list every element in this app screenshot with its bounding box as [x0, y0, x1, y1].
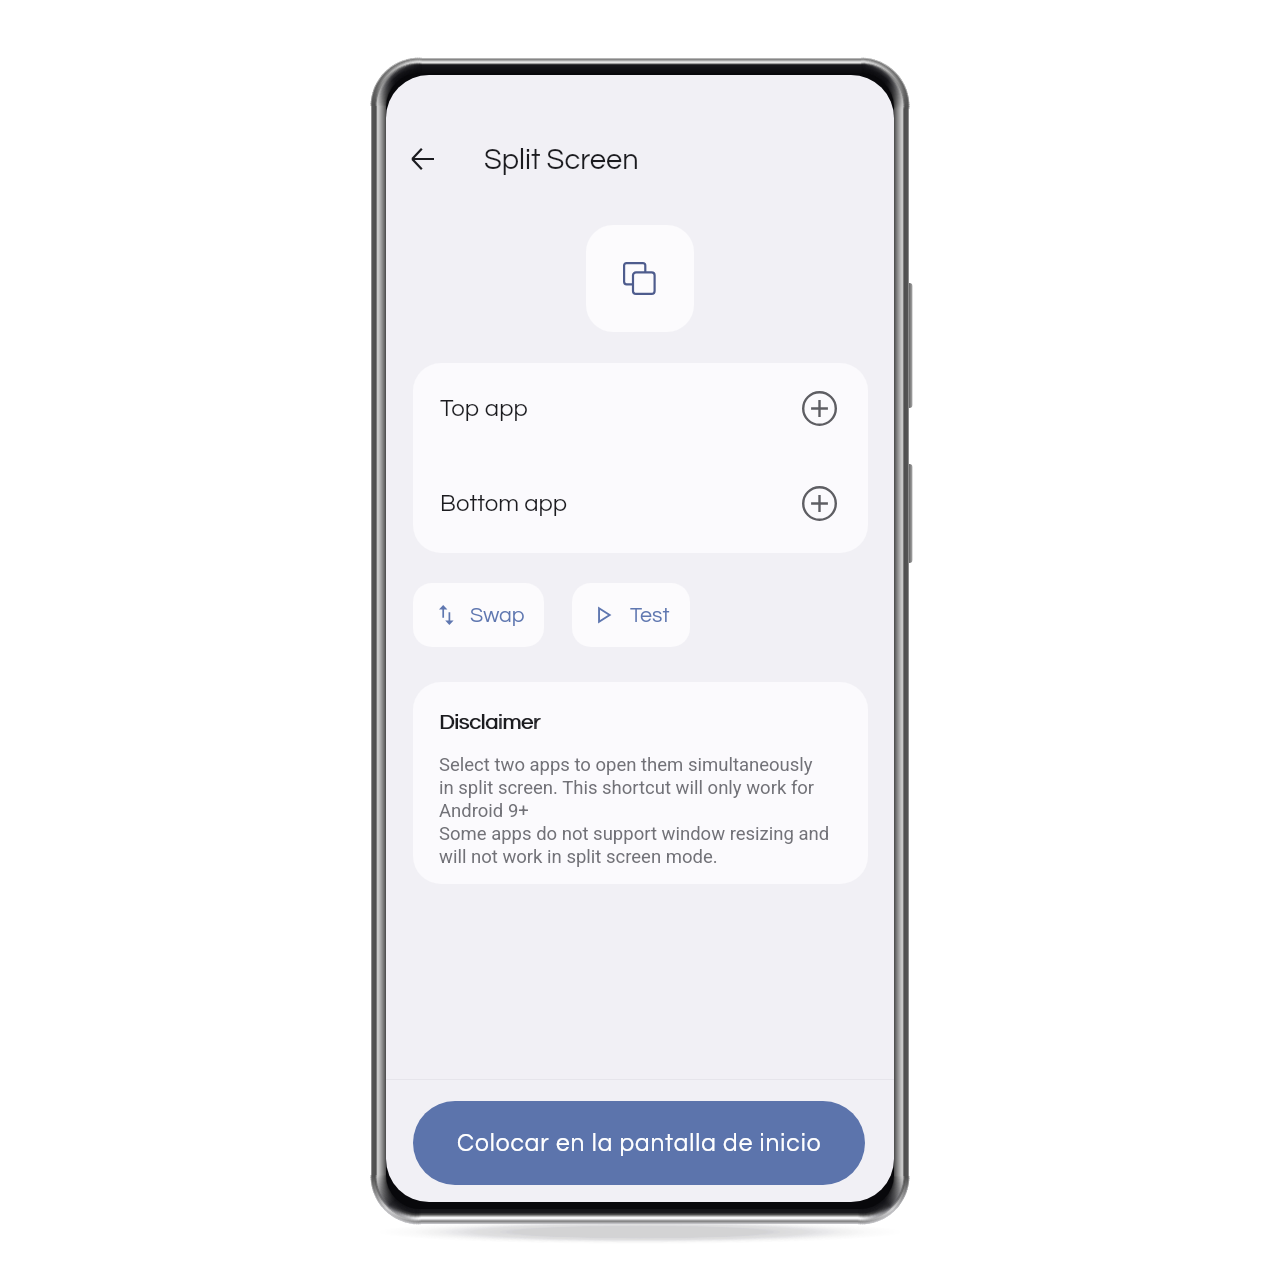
- button[interactable]: Colocar en la pantalla de inicio: [413, 1101, 865, 1185]
- staticText: Top app: [440, 396, 528, 421]
- staticText: Disclaimer: [439, 711, 541, 733]
- staticText: Colocar en la pantalla de inicio: [457, 1131, 822, 1156]
- staticText: Disclaimer: [440, 711, 542, 733]
- button[interactable]: Swap: [413, 583, 544, 647]
- staticText: Split Screen: [484, 145, 639, 175]
- button[interactable]: Back: [399, 135, 447, 183]
- button[interactable]: Top app: [413, 363, 868, 458]
- staticText: Swap: [470, 604, 525, 626]
- button[interactable]: Test: [572, 583, 690, 647]
- staticText: Bottom app: [440, 491, 568, 516]
- staticText: Test: [630, 604, 670, 626]
- staticText: Select two apps to open them simultaneou…: [439, 754, 830, 868]
- button[interactable]: Bottom app: [413, 458, 868, 553]
- button[interactable]: Split screen: [586, 225, 694, 332]
